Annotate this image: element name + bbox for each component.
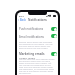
button[interactable]: Toggle xyxy=(51,52,57,56)
staticText: Receive alerts about new messages and up… xyxy=(19,41,55,50)
button[interactable]: Back xyxy=(17,12,26,16)
staticText: ‹ Back xyxy=(18,18,27,22)
button[interactable]: Toggle xyxy=(51,27,57,31)
staticText: Notifications xyxy=(28,18,47,22)
staticText: ▂▄▆ xyxy=(46,14,52,17)
staticText: Weekly digest xyxy=(19,56,36,59)
staticText: Push notifications xyxy=(19,27,44,31)
staticText: Marketing emails xyxy=(19,52,45,56)
staticText: 9:41 xyxy=(19,14,24,17)
staticText: We only send the most relevant offers an… xyxy=(19,58,55,75)
button[interactable]: Toggle xyxy=(51,34,57,38)
staticText: Email notifications xyxy=(19,35,44,39)
